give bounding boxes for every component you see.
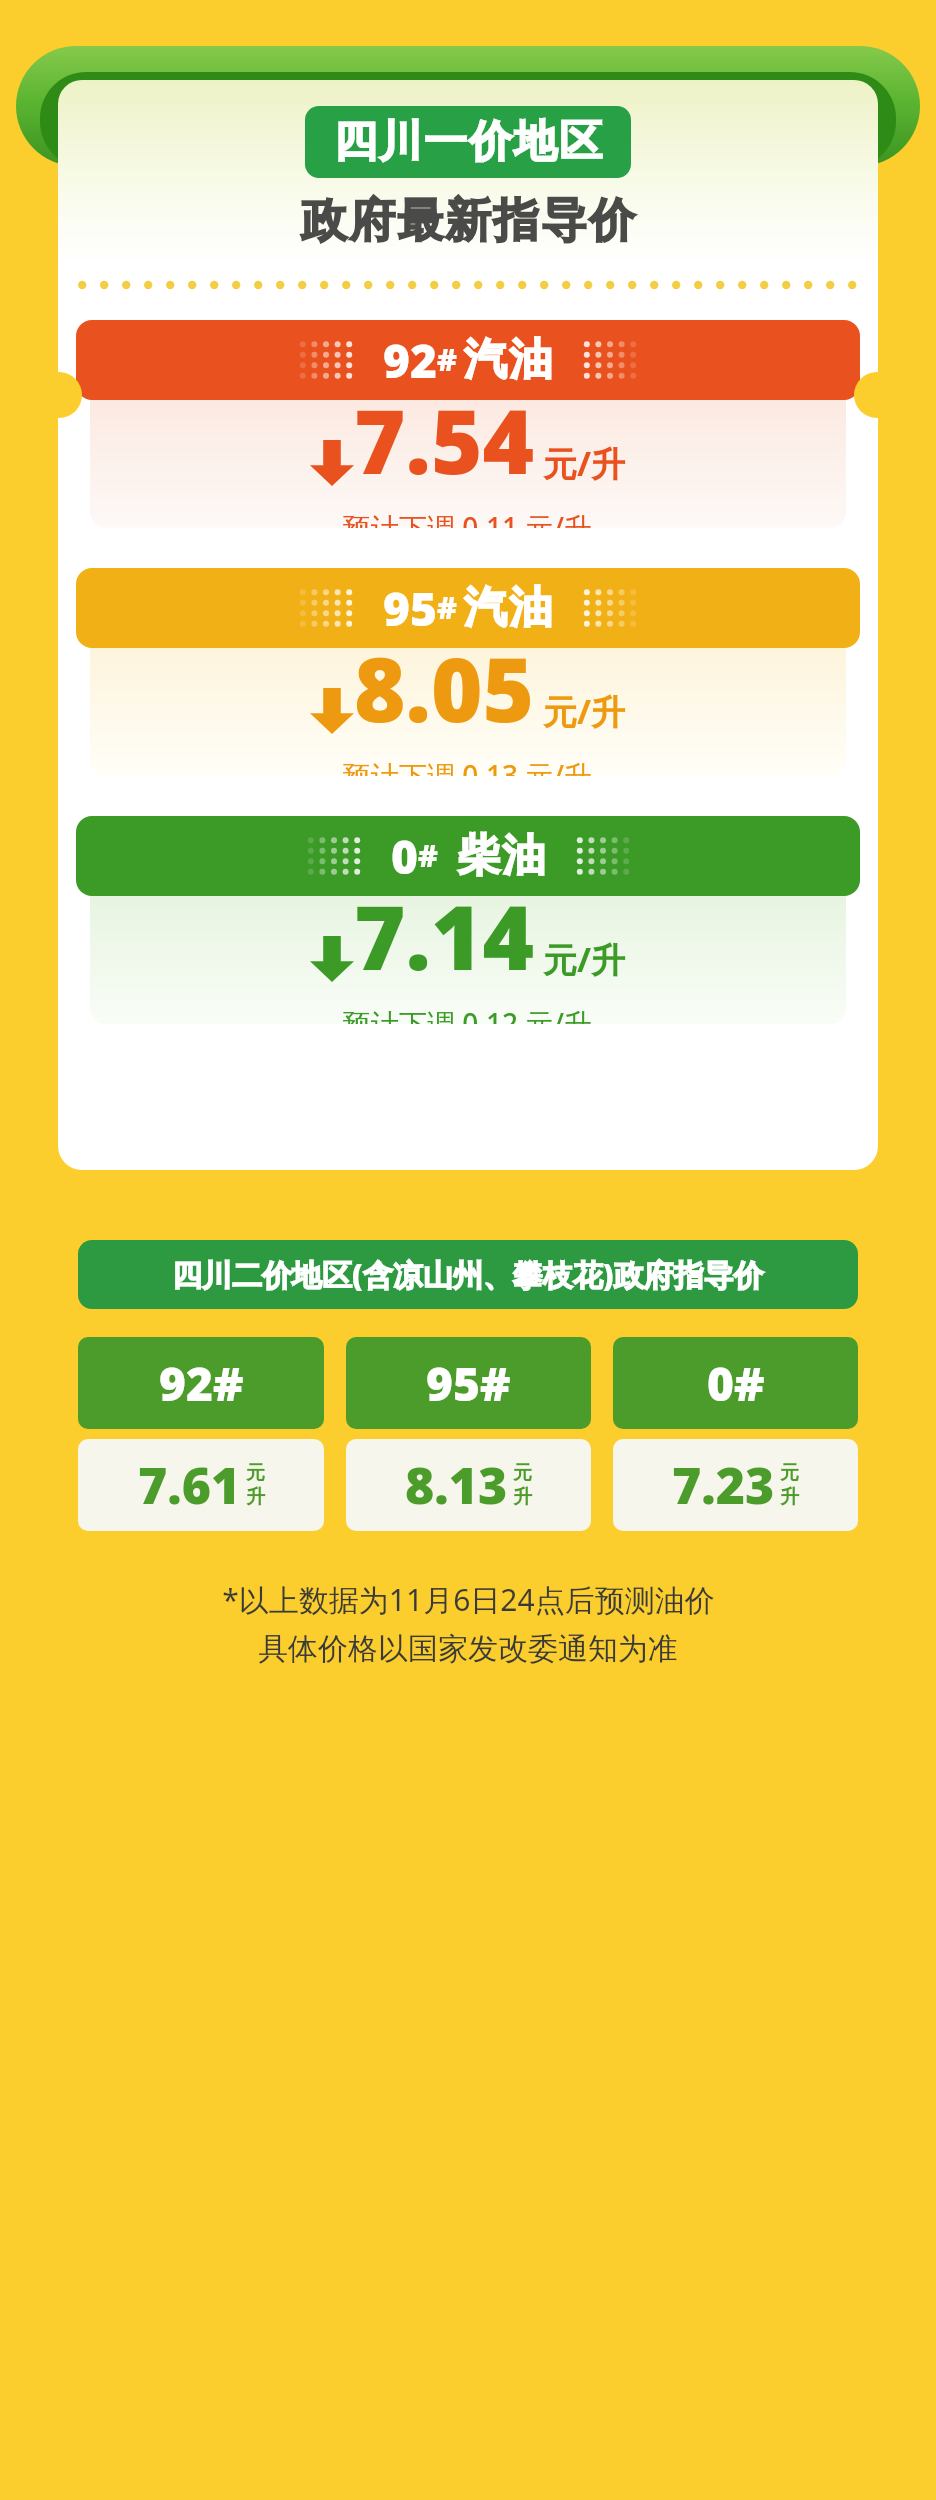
staticText: #: [437, 587, 457, 628]
staticText: 四川一价地区: [333, 115, 603, 169]
staticText: 0: [391, 825, 418, 888]
button[interactable]: 8.05: [76, 568, 860, 776]
staticText: #: [437, 339, 457, 380]
staticText: 95: [383, 577, 437, 640]
staticText: 95#: [426, 1352, 511, 1415]
staticText: 7.61: [138, 1451, 241, 1519]
staticText: #: [418, 835, 438, 876]
button[interactable]: 95#: [346, 1337, 591, 1531]
staticText: 预计下调 0.11 元/升: [343, 508, 593, 528]
staticText: 7.14: [354, 876, 535, 996]
button[interactable]: 92#: [78, 1337, 324, 1531]
staticText: 0#: [707, 1352, 765, 1415]
staticText: 元: [780, 1461, 799, 1485]
staticText: 预计下调 0.13 元/升: [343, 756, 593, 776]
staticText: 汽油: [463, 333, 553, 387]
staticText: 8.05: [354, 628, 535, 748]
staticText: 元: [513, 1461, 532, 1485]
staticText: 升: [513, 1485, 532, 1509]
staticText: 具体价格以国家发改委通知为准: [258, 1630, 678, 1668]
staticText: 7.54: [354, 380, 535, 500]
button[interactable]: 四川二价地区(含凉山州、攀枝花)政府指导价: [78, 1240, 858, 1309]
staticText: 预计下调 0.12 元/升: [343, 1004, 593, 1024]
staticText: 元/升: [543, 936, 626, 982]
button[interactable]: 7.14: [76, 816, 860, 1024]
staticText: 升: [780, 1485, 799, 1509]
staticText: 柴油: [456, 829, 546, 883]
staticText: 元/升: [543, 688, 626, 734]
staticText: 7.23: [672, 1451, 775, 1519]
staticText: 元/升: [543, 440, 626, 486]
staticText: 92#: [159, 1352, 244, 1415]
staticText: 92: [383, 329, 437, 392]
staticText: 8.13: [405, 1451, 508, 1519]
staticText: 升: [246, 1485, 265, 1509]
staticText: 汽油: [463, 581, 553, 635]
staticText: *以上数据为11月6日24点后预测油价: [222, 1579, 715, 1620]
button[interactable]: 四川一价地区: [305, 106, 631, 178]
staticText: 四川二价地区(含凉山州、攀枝花)政府指导价: [172, 1254, 764, 1295]
button[interactable]: 0#: [613, 1337, 858, 1531]
button[interactable]: 7.54: [76, 320, 860, 528]
staticText: 元: [246, 1461, 265, 1485]
staticText: 政府最新指导价: [300, 192, 636, 250]
